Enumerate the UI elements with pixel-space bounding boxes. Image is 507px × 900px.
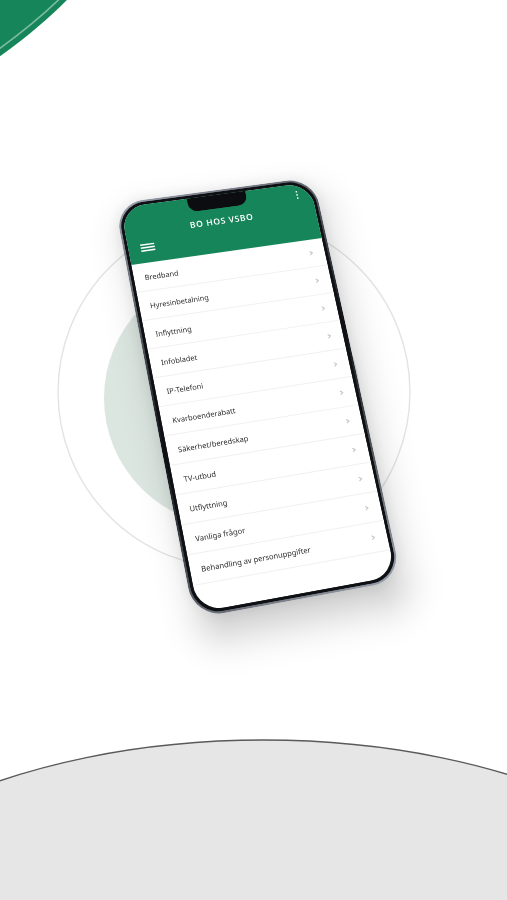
button[interactable]: Behandling av personuppgifter [187, 521, 390, 585]
staticText: Utflyttning [189, 475, 358, 514]
button[interactable]: IP-Telefoni [153, 348, 352, 406]
staticText: Infobladet [160, 332, 327, 367]
staticText: IP-Telefoni [166, 361, 333, 396]
button[interactable]: TV-utbud [170, 434, 371, 495]
staticText: Inflyttning [155, 305, 321, 339]
staticText: Behandling av personuppgifter [200, 534, 371, 574]
staticText: Kvarboenderabatt [171, 389, 339, 425]
staticText: BO HOS VSBO [189, 210, 254, 230]
button[interactable]: Utflyttning [176, 462, 377, 524]
button[interactable]: Infobladet [147, 321, 346, 377]
staticText: TV-utbud [183, 446, 352, 484]
button[interactable]: Hyresinbetalning [137, 265, 334, 320]
staticText: Bredband [144, 249, 309, 282]
button[interactable]: Vanliga frågor [181, 492, 384, 555]
staticText: Hyresinbetalning [149, 277, 315, 310]
staticText: Säkerhet/beredskap [177, 417, 346, 454]
button[interactable]: Säkerhet/beredskap [164, 405, 365, 465]
staticText: Vanliga frågor [194, 504, 364, 543]
button[interactable]: Bredband [131, 238, 328, 292]
button[interactable]: Inflyttning [142, 293, 340, 349]
button[interactable]: More options [288, 187, 306, 203]
button[interactable]: Menu [136, 237, 159, 258]
button[interactable]: Kvarboenderabatt [159, 377, 358, 436]
